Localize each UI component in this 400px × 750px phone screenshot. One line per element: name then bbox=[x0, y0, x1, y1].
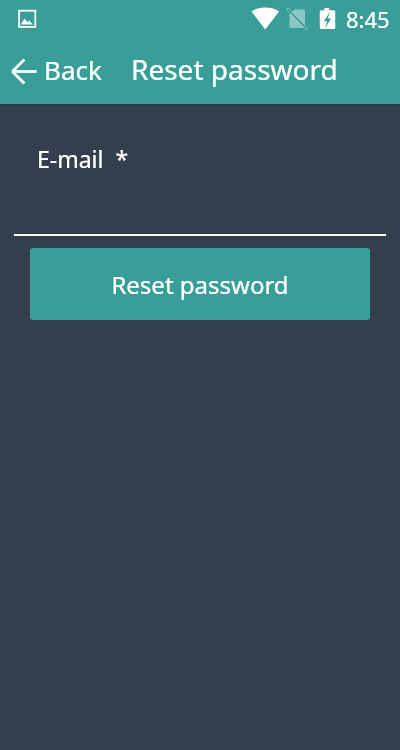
staticText: 8:45 bbox=[346, 4, 390, 34]
staticText: Reset password bbox=[111, 268, 289, 301]
staticText: Back bbox=[44, 52, 102, 87]
button[interactable]: Back bbox=[0, 47, 110, 94]
staticText: Reset password bbox=[131, 50, 338, 88]
button[interactable]: E-mail * bbox=[14, 128, 386, 236]
staticText: E-mail * bbox=[37, 143, 129, 174]
button[interactable]: Reset password bbox=[30, 248, 370, 320]
